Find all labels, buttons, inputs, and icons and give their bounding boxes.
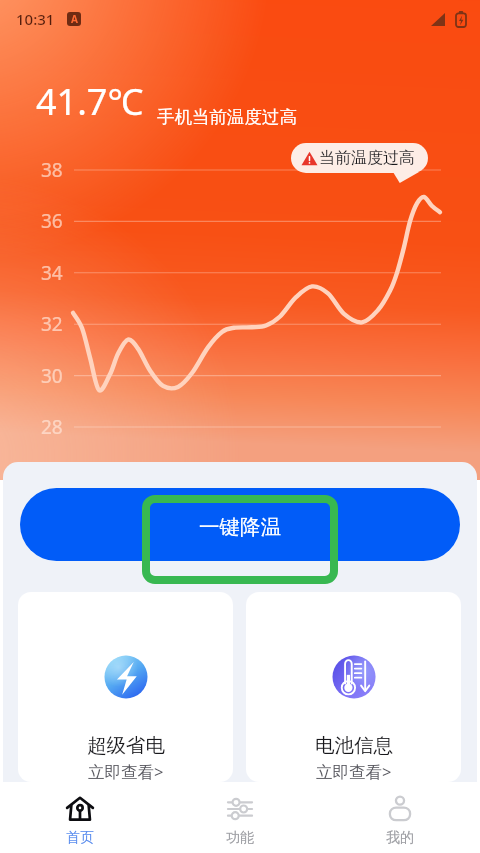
button[interactable]: 电池信息 [246, 592, 461, 782]
staticText: 电池信息 [315, 733, 393, 758]
staticText: 立即查看> [316, 760, 392, 782]
button[interactable]: 超级省电 [18, 592, 233, 782]
staticText: 10:31 [16, 9, 55, 29]
staticText: 38 [41, 157, 63, 183]
staticText: 28 [41, 414, 63, 440]
button[interactable]: 功能 [160, 788, 320, 853]
staticText: 41.7℃ [36, 77, 144, 126]
staticText: 首页 [66, 829, 94, 847]
staticText: 一键降温 [199, 514, 281, 540]
button[interactable]: 首页 [0, 788, 160, 853]
staticText: 立即查看> [88, 760, 164, 782]
staticText: A [71, 12, 78, 26]
button[interactable]: 一键降温 [20, 488, 460, 561]
staticText: 36 [41, 208, 63, 234]
staticText: 功能 [226, 829, 254, 847]
staticText: 手机当前温度过高 [157, 106, 297, 128]
button[interactable]: 我的 [320, 788, 480, 853]
staticText: 30 [41, 363, 63, 389]
staticText: 34 [41, 260, 63, 286]
staticText: 当前温度过高 [319, 148, 415, 168]
staticText: 我的 [386, 829, 414, 847]
staticText: 超级省电 [87, 733, 165, 758]
staticText: 32 [41, 311, 63, 337]
